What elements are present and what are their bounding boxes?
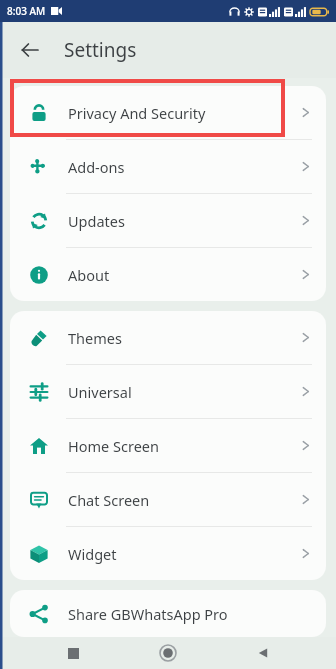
button[interactable]: Updates	[10, 194, 326, 247]
staticText: Widget	[68, 544, 117, 564]
button[interactable]: About	[10, 248, 326, 301]
staticText: Privacy And Security	[68, 103, 206, 123]
button[interactable]: Back	[241, 637, 285, 669]
button[interactable]: Themes	[10, 311, 326, 364]
staticText: 8:03 AM	[7, 4, 46, 18]
button[interactable]: Recent apps	[51, 637, 95, 669]
button[interactable]: Privacy And Security	[10, 86, 326, 139]
staticText: Share GBWhatsApp Pro	[68, 604, 228, 624]
button[interactable]: Widget	[10, 527, 326, 580]
button[interactable]: Share GBWhatsApp Pro	[10, 590, 326, 637]
staticText: Updates	[68, 211, 125, 231]
button[interactable]: Universal	[10, 365, 326, 418]
staticText: Chat Screen	[68, 490, 150, 510]
staticText: Settings	[64, 37, 137, 63]
button[interactable]: Home Screen	[10, 419, 326, 472]
staticText: Home Screen	[68, 436, 159, 456]
staticText: Add-ons	[68, 157, 125, 177]
staticText: Universal	[68, 382, 132, 402]
staticText: About	[68, 265, 110, 285]
button[interactable]: Chat Screen	[10, 473, 326, 526]
staticText: Themes	[68, 328, 122, 348]
button[interactable]: Back	[8, 28, 52, 72]
button[interactable]: Home	[146, 637, 190, 669]
button[interactable]: Add-ons	[10, 140, 326, 193]
